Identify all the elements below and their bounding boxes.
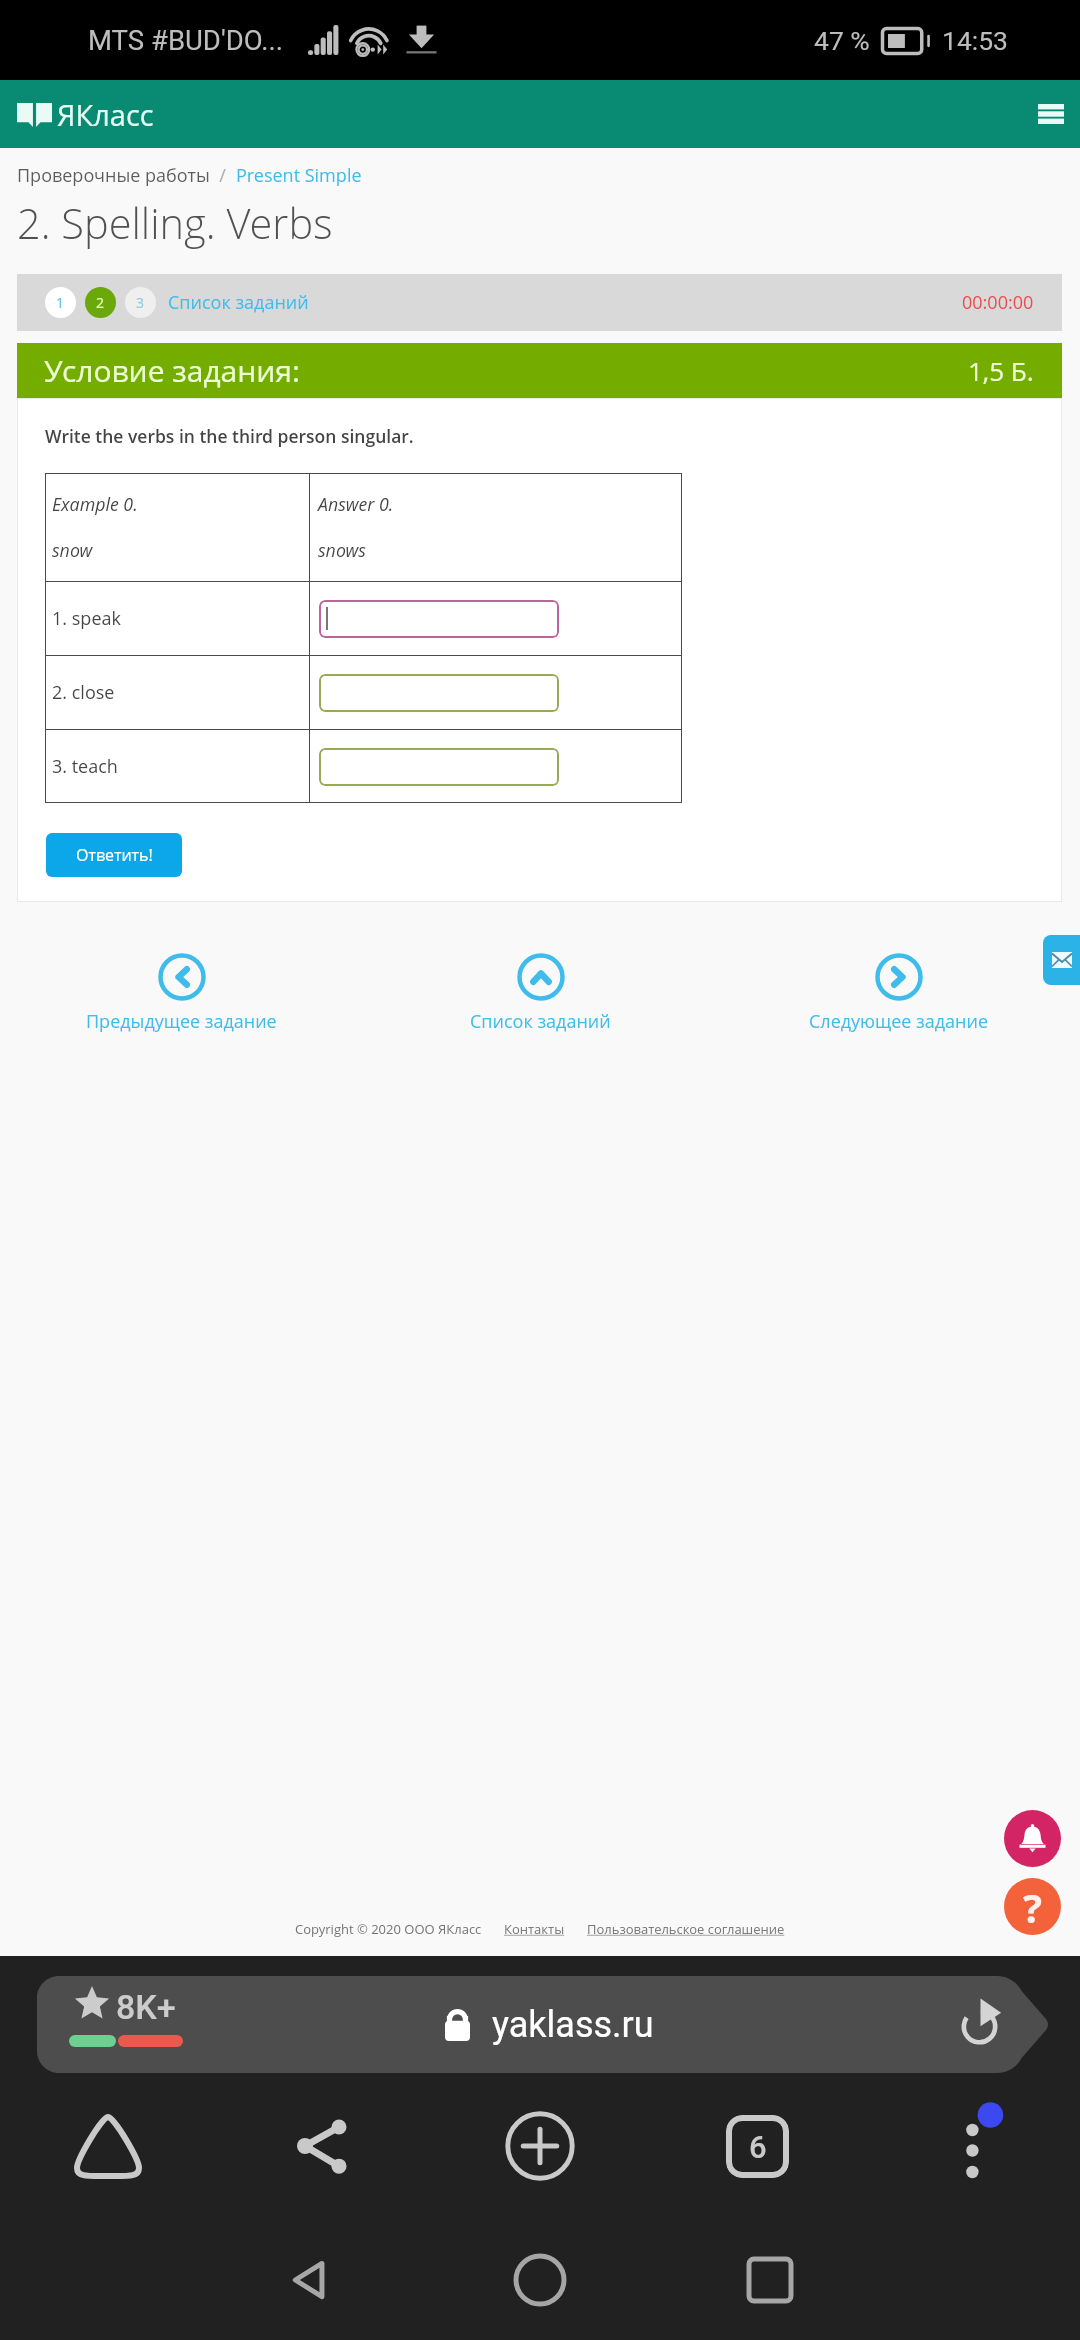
button[interactable]: Home xyxy=(63,2101,153,2191)
staticText: Следующее задание xyxy=(809,1009,988,1034)
staticText: Copyright © 2020 ООО ЯКласс xyxy=(295,1920,482,1938)
button[interactable]: Menu xyxy=(1023,86,1079,142)
staticText: Example 0. xyxy=(52,492,138,516)
button[interactable]: Share xyxy=(277,2101,367,2191)
staticText: 1. speak xyxy=(52,606,121,631)
button[interactable]: More options xyxy=(950,2098,1020,2188)
staticText: 47 % xyxy=(814,25,870,56)
staticText: yaklass.ru xyxy=(492,2004,654,2046)
staticText: Answer 0. xyxy=(318,492,394,516)
staticText: Ответить! xyxy=(76,844,153,866)
button[interactable]: 1 xyxy=(45,287,76,318)
button[interactable]: Notifications xyxy=(1004,1810,1061,1867)
button[interactable]: Проверочные работы xyxy=(17,163,210,188)
button[interactable]: Пользовательское соглашение xyxy=(587,1920,785,1938)
button[interactable]: Back xyxy=(260,2240,360,2320)
staticText: snows xyxy=(318,538,366,562)
staticText: 1 xyxy=(56,293,65,312)
staticText: ЯКласс xyxy=(57,95,154,134)
button[interactable]: Help xyxy=(1004,1878,1061,1935)
button[interactable]: New tab xyxy=(495,2101,585,2191)
staticText: snow xyxy=(52,538,93,562)
staticText: 3 xyxy=(136,293,145,312)
staticText: Предыдущее задание xyxy=(86,1009,277,1034)
staticText: 2. close xyxy=(52,680,115,705)
staticText: 2. Spelling. Verbs xyxy=(17,195,333,252)
button[interactable]: Recents xyxy=(720,2240,820,2320)
staticText: / xyxy=(210,163,236,188)
staticText: 8K+ xyxy=(116,1987,176,2027)
button[interactable]: Список заданий xyxy=(168,290,309,315)
button[interactable]: Reload xyxy=(951,1997,1007,2053)
staticText: Write the verbs in the third person sing… xyxy=(45,424,414,448)
button[interactable]: Следующее задание xyxy=(809,953,988,1034)
button[interactable] xyxy=(319,600,559,638)
button[interactable]: Контакты xyxy=(504,1920,565,1938)
staticText: Условие задания: xyxy=(44,350,300,391)
staticText: Список заданий xyxy=(470,1009,611,1034)
button[interactable] xyxy=(319,674,559,712)
staticText: 3. teach xyxy=(52,754,118,779)
staticText: ? xyxy=(1023,1880,1043,1934)
button[interactable]: Present Simple xyxy=(236,163,362,188)
staticText: MTS #BUD'DO... xyxy=(88,24,284,56)
staticText: 2 xyxy=(96,293,105,312)
staticText: 6 xyxy=(749,2129,767,2165)
button[interactable]: Tabs xyxy=(712,2101,802,2191)
button[interactable]: ЯКласс xyxy=(17,95,154,134)
button[interactable] xyxy=(319,748,559,786)
button[interactable]: 2 xyxy=(85,287,116,318)
button[interactable]: 3 xyxy=(125,287,156,318)
button[interactable]: Предыдущее задание xyxy=(86,953,277,1034)
button[interactable]: Feedback mail xyxy=(1043,935,1080,985)
button[interactable]: Список заданий xyxy=(470,953,611,1034)
staticText: 14:53 xyxy=(942,25,1008,56)
staticText: 00:00:00 xyxy=(962,290,1034,315)
staticText: 1,5 Б. xyxy=(968,353,1034,388)
button[interactable]: Ответить! xyxy=(46,833,182,877)
button[interactable]: Home xyxy=(490,2240,590,2320)
